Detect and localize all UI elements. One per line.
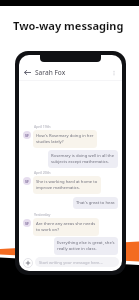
staticText: SF — [25, 179, 29, 184]
button[interactable]: She is working hard at home to improve m… — [33, 176, 101, 194]
button[interactable]: Everything else is great, she's really a… — [54, 237, 118, 255]
staticText: SF — [25, 133, 29, 138]
staticText: She is working hard at home to improve m… — [36, 179, 98, 191]
button[interactable]: Are there any areas she needs to work on… — [33, 218, 99, 236]
button[interactable]: Rosemary is doing well in all the subjec… — [48, 150, 118, 168]
button[interactable]: Add attachment — [22, 257, 33, 268]
button[interactable]: Start writing your message here... — [35, 257, 119, 267]
staticText: April 20th — [34, 170, 51, 175]
button[interactable]: More options — [108, 67, 119, 78]
button[interactable]: Back — [22, 67, 33, 78]
button[interactable]: That's great to hear. — [73, 197, 118, 209]
staticText: SF — [25, 221, 29, 226]
staticText: Are there any areas she needs to work on… — [36, 221, 96, 233]
staticText: How's Rosemary doing in her studies late… — [36, 133, 94, 145]
staticText: Start writing your message here... — [39, 260, 103, 265]
staticText: That's great to hear. — [76, 200, 115, 206]
staticText: April 19th — [34, 124, 51, 129]
staticText: Rosemary is doing well in all the subjec… — [51, 153, 115, 165]
staticText: Everything else is great, she's really a… — [57, 240, 115, 252]
staticText: Two-way messaging — [13, 18, 124, 33]
staticText: Sarah Fox — [35, 68, 66, 77]
button[interactable]: How's Rosemary doing in her studies late… — [33, 130, 97, 148]
staticText: Yesterday — [34, 212, 51, 217]
